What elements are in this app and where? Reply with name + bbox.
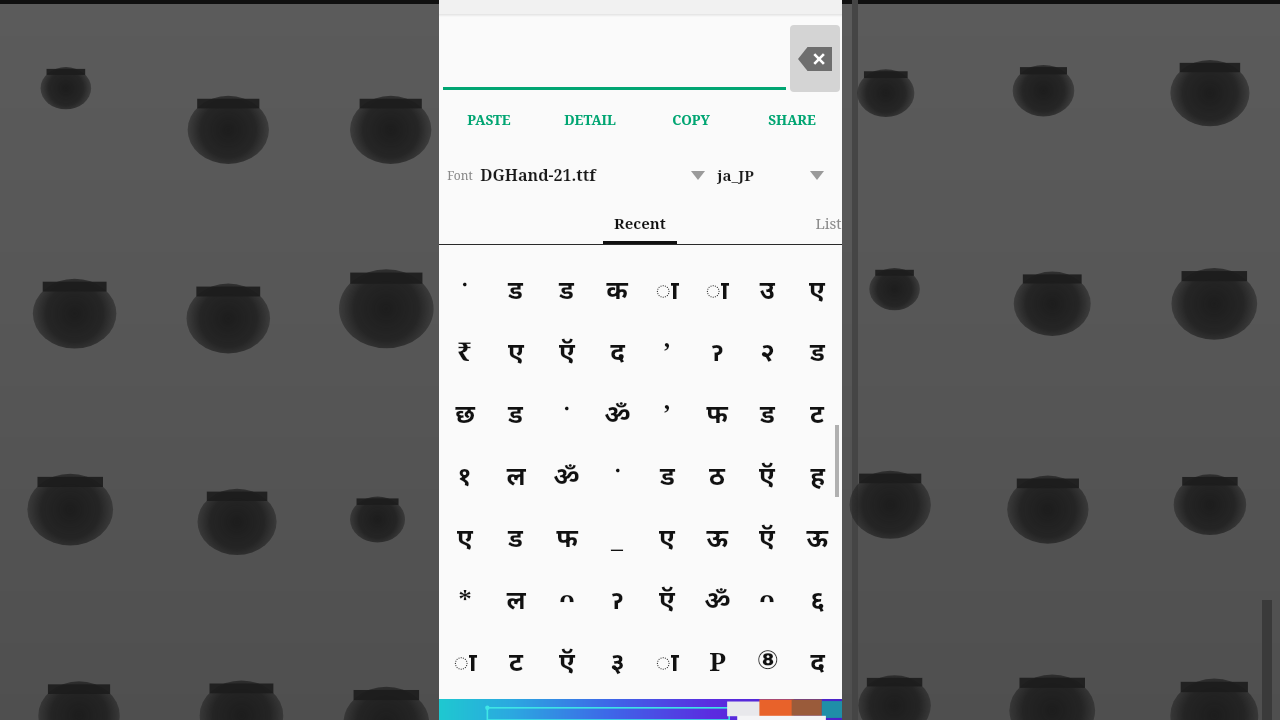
button[interactable]: ६ xyxy=(792,567,842,629)
button[interactable]: फ xyxy=(692,381,742,443)
button[interactable]: ऍ xyxy=(742,443,792,505)
button[interactable]: ᴖ xyxy=(541,567,592,629)
staticText: ऍ xyxy=(759,519,775,554)
staticText: COPY xyxy=(672,111,710,129)
button[interactable]: ॐ xyxy=(592,381,642,443)
staticText: PASTE xyxy=(467,111,511,129)
staticText: ा xyxy=(655,271,679,306)
staticText: ʼ xyxy=(663,395,671,430)
button[interactable]: २ xyxy=(742,319,792,381)
button[interactable]: उ xyxy=(742,257,792,319)
button[interactable]: ऊ xyxy=(692,505,742,567)
staticText: ल xyxy=(506,581,526,616)
staticText: ᴖ xyxy=(559,581,575,616)
button[interactable]: ⑧ xyxy=(742,629,792,691)
staticText: DGHand-21.ttf xyxy=(480,164,596,186)
staticText: Recent xyxy=(614,213,666,233)
staticText: ड xyxy=(810,333,825,368)
button[interactable]: द xyxy=(592,319,642,381)
button[interactable]: ᴖ xyxy=(742,567,792,629)
button[interactable]: ड xyxy=(792,319,842,381)
staticText: ा xyxy=(655,643,679,678)
button[interactable]: * xyxy=(439,567,490,629)
staticText: ॱ xyxy=(562,395,571,430)
button[interactable]: ड xyxy=(490,381,541,443)
button[interactable]: ʼ xyxy=(642,319,692,381)
button[interactable]: ॽ xyxy=(592,567,642,629)
button[interactable]: DETAIL xyxy=(539,94,640,146)
staticText: ॐ xyxy=(553,457,580,492)
button[interactable]: List xyxy=(680,204,842,244)
button[interactable]: _ xyxy=(592,505,642,567)
staticText: १ xyxy=(457,457,472,492)
button[interactable]: ॱ xyxy=(592,443,642,505)
staticText: ड xyxy=(508,395,523,430)
button[interactable]: ल xyxy=(490,567,541,629)
button[interactable]: ा xyxy=(642,629,692,691)
button[interactable]: ऍ xyxy=(742,505,792,567)
staticText: ल xyxy=(506,457,526,492)
staticText: ऍ xyxy=(559,643,575,678)
button[interactable]: ऍ xyxy=(541,319,592,381)
staticText: ड xyxy=(508,271,523,306)
button[interactable]: ह xyxy=(792,443,842,505)
staticText: ठ xyxy=(709,457,725,492)
button[interactable]: P xyxy=(692,629,742,691)
button[interactable]: ड xyxy=(490,257,541,319)
staticText: ड xyxy=(760,395,775,430)
button[interactable]: ॽ xyxy=(692,319,742,381)
staticText: ड xyxy=(660,457,675,492)
button[interactable]: ड xyxy=(642,443,692,505)
staticText: ʼ xyxy=(663,333,671,368)
button[interactable]: ड xyxy=(490,505,541,567)
button[interactable]: १ xyxy=(439,443,490,505)
button[interactable]: ॱ xyxy=(541,381,592,443)
button[interactable]: ऍ xyxy=(642,567,692,629)
button[interactable]: SHARE xyxy=(741,94,842,146)
button[interactable]: ₹ xyxy=(439,319,490,381)
button[interactable]: Backspace xyxy=(790,25,840,92)
staticText: ऍ xyxy=(659,581,675,616)
staticText: ऍ xyxy=(559,333,575,368)
button[interactable]: छ xyxy=(439,381,490,443)
button[interactable]: ए xyxy=(792,257,842,319)
button[interactable]: फ xyxy=(541,505,592,567)
button[interactable]: ऍ xyxy=(541,629,592,691)
staticText: ड xyxy=(559,271,574,306)
button[interactable]: ऊ xyxy=(792,505,842,567)
button[interactable]: ल xyxy=(490,443,541,505)
button[interactable]: ॐ xyxy=(692,567,742,629)
button[interactable]: ए xyxy=(642,505,692,567)
button[interactable]: ा xyxy=(642,257,692,319)
button[interactable]: Font xyxy=(447,146,717,204)
button[interactable]: ॐ xyxy=(541,443,592,505)
button[interactable]: ठ xyxy=(692,443,742,505)
button[interactable]: ट xyxy=(490,629,541,691)
button[interactable]: ए xyxy=(439,505,490,567)
staticText: DETAIL xyxy=(564,111,616,129)
button[interactable]: ʼ xyxy=(642,381,692,443)
staticText: ए xyxy=(508,333,524,368)
button[interactable]: ja_JP xyxy=(717,146,842,204)
button[interactable]: ३ xyxy=(592,629,642,691)
staticText: _ xyxy=(611,519,623,554)
button[interactable]: Recent xyxy=(600,204,680,244)
staticText: List xyxy=(815,213,842,233)
staticText: ॽ xyxy=(710,333,724,368)
button[interactable]: द xyxy=(792,629,842,691)
button[interactable]: ा xyxy=(692,257,742,319)
button[interactable]: क xyxy=(592,257,642,319)
button[interactable]: PASTE xyxy=(439,94,539,146)
button[interactable] xyxy=(439,699,842,720)
staticText: ट xyxy=(810,395,824,430)
staticText: ₹ xyxy=(457,333,472,368)
button[interactable]: ट xyxy=(792,381,842,443)
button[interactable]: ा xyxy=(439,629,490,691)
button[interactable]: ए xyxy=(490,319,541,381)
button[interactable]: COPY xyxy=(640,94,741,146)
button[interactable]: ड xyxy=(541,257,592,319)
button[interactable]: ॱ xyxy=(439,257,490,319)
button[interactable]: ड xyxy=(742,381,792,443)
staticText: द xyxy=(810,643,825,678)
